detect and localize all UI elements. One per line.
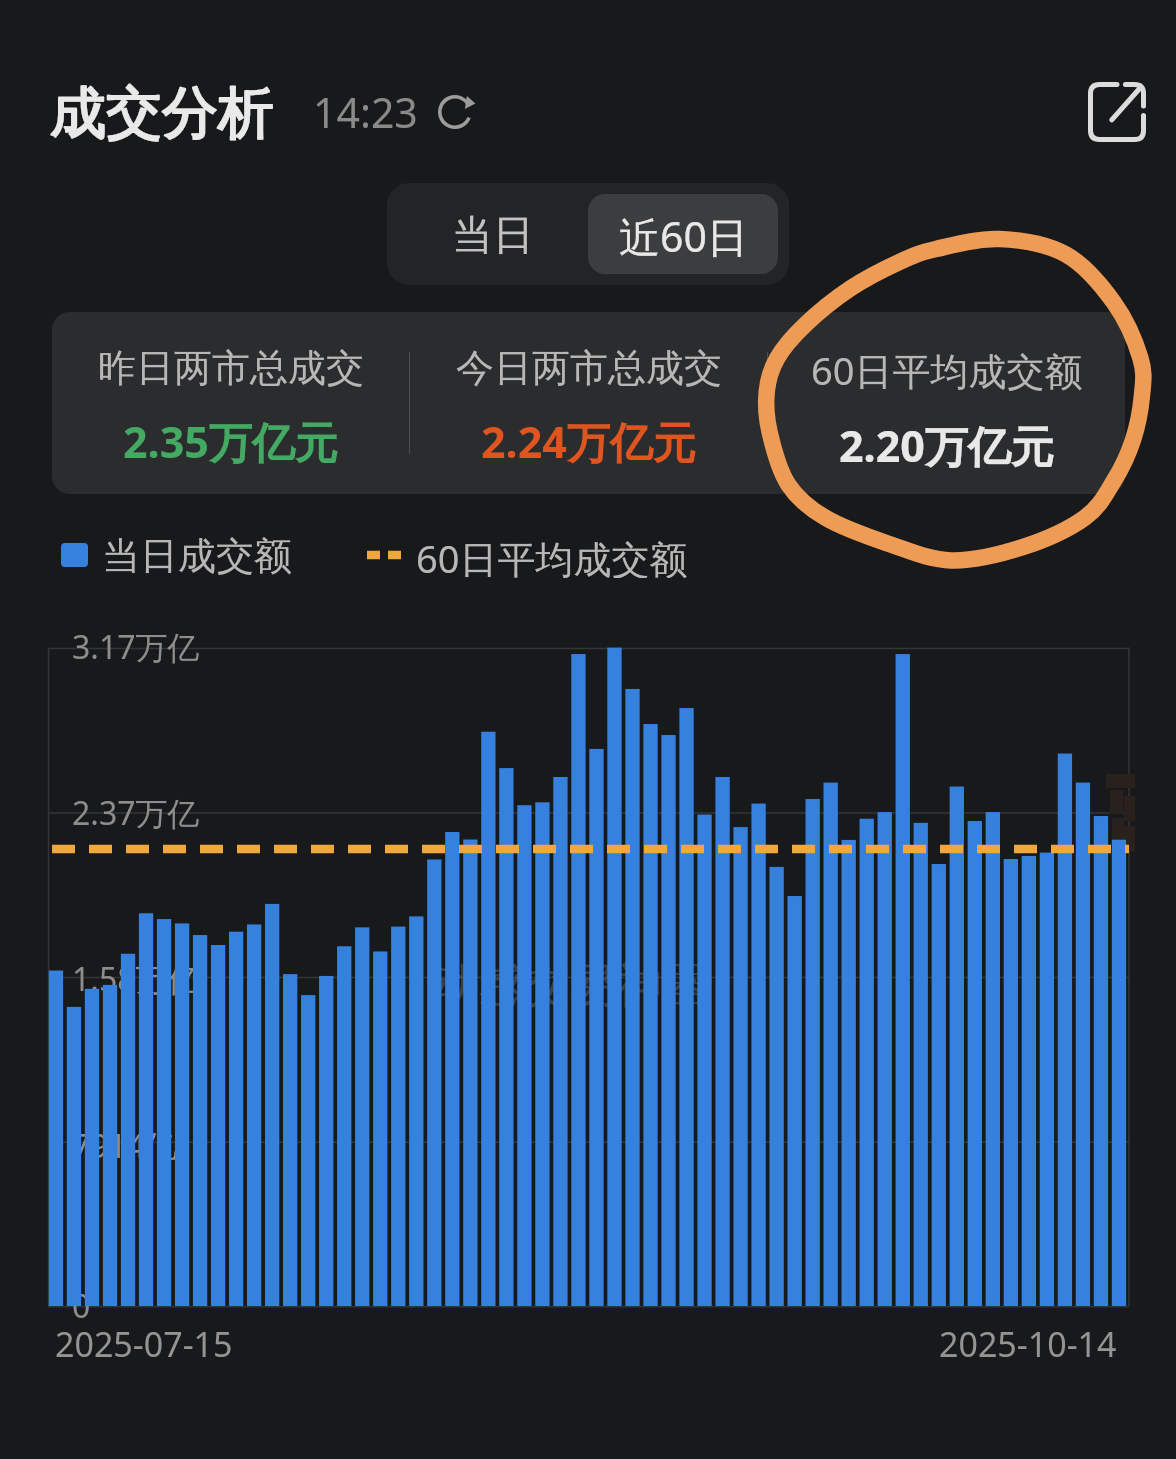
staticText: 60日平均成交额 <box>811 344 1083 396</box>
staticText: 动感交易神器 <box>432 957 708 1015</box>
staticText: 当日成交额 <box>102 532 292 578</box>
button[interactable]: 当日 <box>398 194 588 274</box>
staticText: 2.35万亿元 <box>123 412 338 471</box>
staticText: 今日两市总成交 <box>456 344 722 392</box>
staticText: 成交分析 <box>50 78 274 146</box>
button[interactable]: 近60日 <box>588 194 778 274</box>
staticText: 7914亿 <box>72 1124 178 1168</box>
staticText: 2.37万亿 <box>72 791 200 835</box>
staticText: 14:23 <box>313 84 418 140</box>
button[interactable]: Share <box>1074 78 1160 146</box>
staticText: 2025-07-15 <box>55 1321 233 1367</box>
staticText: 0 <box>72 1284 91 1328</box>
staticText: 昨日两市总成交 <box>98 344 364 392</box>
staticText: 3.17万亿 <box>72 625 200 669</box>
button[interactable]: 昨日两市总成交 <box>52 312 409 494</box>
staticText: 2.24万亿元 <box>481 412 696 471</box>
button[interactable]: 今日两市总成交 <box>410 312 767 494</box>
staticText: 1.58万亿 <box>72 957 200 1001</box>
staticText: 当日 <box>452 210 534 262</box>
staticText: 2.20万亿元 <box>839 416 1054 475</box>
button[interactable]: Refresh <box>431 88 479 136</box>
button[interactable]: 60日平均成交额 <box>768 312 1125 494</box>
staticText: 2025-10-14 <box>939 1321 1117 1367</box>
staticText: 近60日 <box>619 208 748 264</box>
staticText: 60日平均成交额 <box>416 532 688 578</box>
staticText: 成交分析 <box>50 78 274 146</box>
